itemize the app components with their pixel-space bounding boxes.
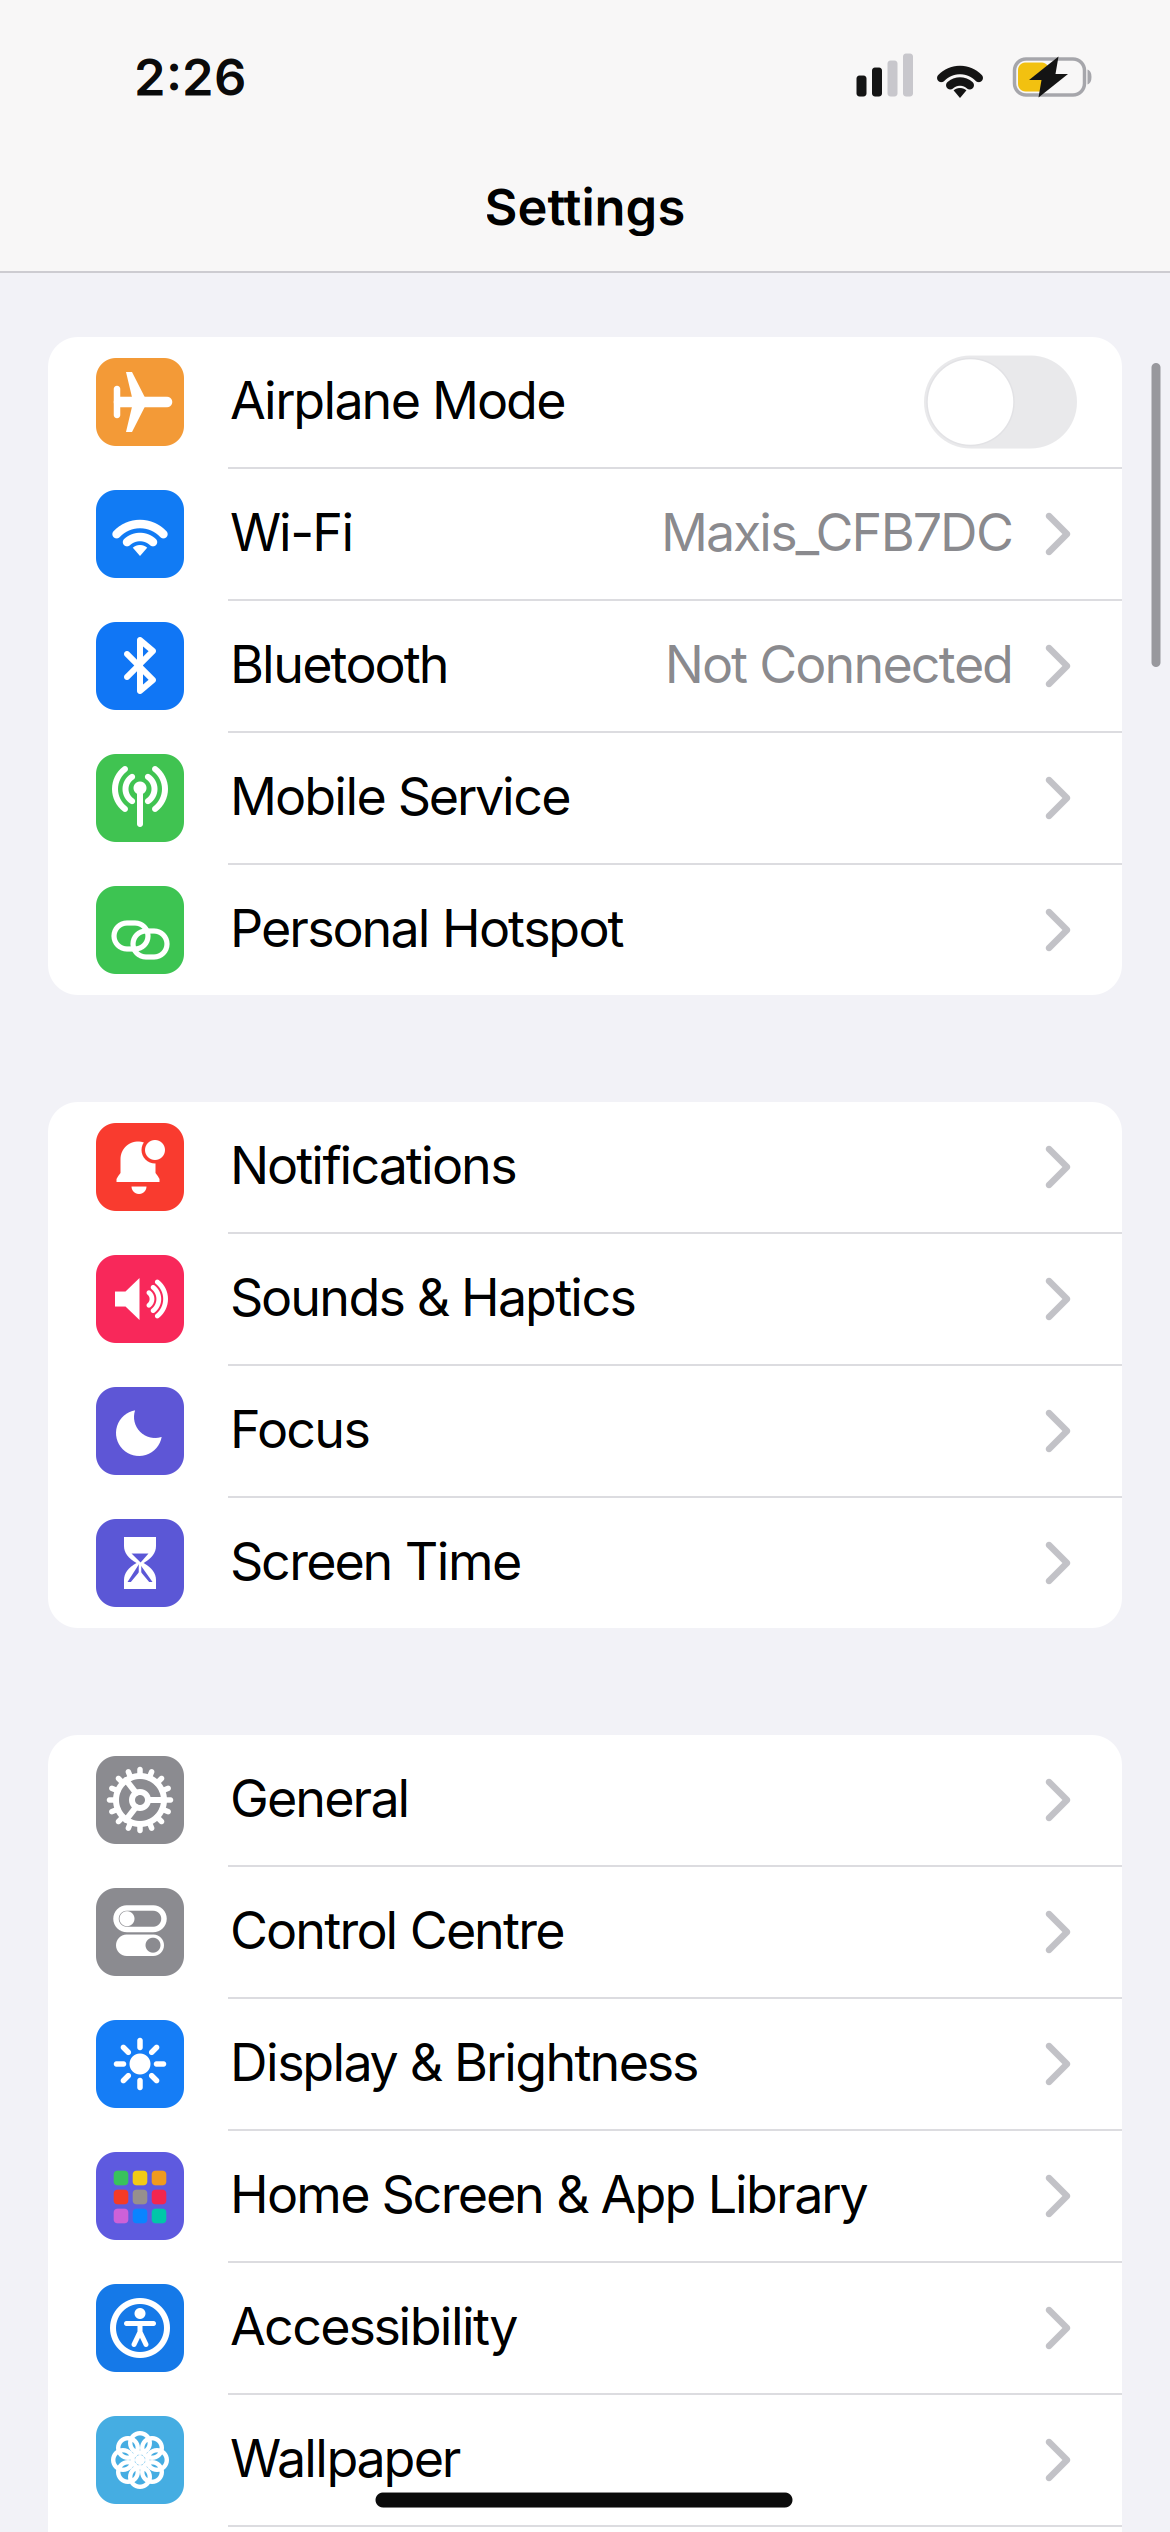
- staticText: Focus: [230, 1398, 370, 1460]
- button[interactable]: Control Centre: [48, 1867, 1122, 1997]
- staticText: Bluetooth: [230, 633, 450, 695]
- button[interactable]: Airplane Mode: [924, 355, 1077, 448]
- button[interactable]: Accessibility: [48, 2263, 1122, 2393]
- staticText: Personal Hotspot: [230, 897, 624, 959]
- staticText: General: [230, 1767, 411, 1829]
- button[interactable]: Personal Hotspot: [48, 865, 1122, 995]
- staticText: Display & Brightness: [230, 2031, 699, 2093]
- staticText: Wi-Fi: [230, 501, 354, 563]
- button[interactable]: Bluetooth: [48, 601, 1122, 731]
- staticText: Accessibility: [230, 2295, 518, 2357]
- button[interactable]: Airplane Mode: [48, 337, 1122, 467]
- button[interactable]: Notifications: [48, 1102, 1122, 1232]
- button[interactable]: Screen Time: [48, 1498, 1122, 1628]
- staticText: Mobile Service: [230, 765, 571, 827]
- staticText: Screen Time: [230, 1530, 522, 1592]
- button[interactable]: Focus: [48, 1366, 1122, 1496]
- button[interactable]: General: [48, 1735, 1122, 1865]
- staticText: Not Connected: [665, 633, 1014, 695]
- staticText: Airplane Mode: [230, 369, 566, 431]
- button[interactable]: Display & Brightness: [48, 1999, 1122, 2129]
- staticText: Sounds & Haptics: [230, 1266, 636, 1328]
- button[interactable]: Wallpaper: [48, 2395, 1122, 2525]
- button[interactable]: Wi-Fi: [48, 469, 1122, 599]
- button[interactable]: Sounds & Haptics: [48, 1234, 1122, 1364]
- button[interactable]: Mobile Service: [48, 733, 1122, 863]
- staticText: Wallpaper: [230, 2427, 462, 2489]
- staticText: Settings: [484, 177, 685, 237]
- staticText: 2:26: [134, 47, 246, 107]
- staticText: Control Centre: [230, 1899, 565, 1961]
- button[interactable]: Home Screen & App Library: [48, 2131, 1122, 2261]
- staticText: Notifications: [230, 1134, 517, 1196]
- staticText: Home Screen & App Library: [230, 2163, 868, 2225]
- staticText: Maxis_CFB7DC: [661, 501, 1014, 563]
